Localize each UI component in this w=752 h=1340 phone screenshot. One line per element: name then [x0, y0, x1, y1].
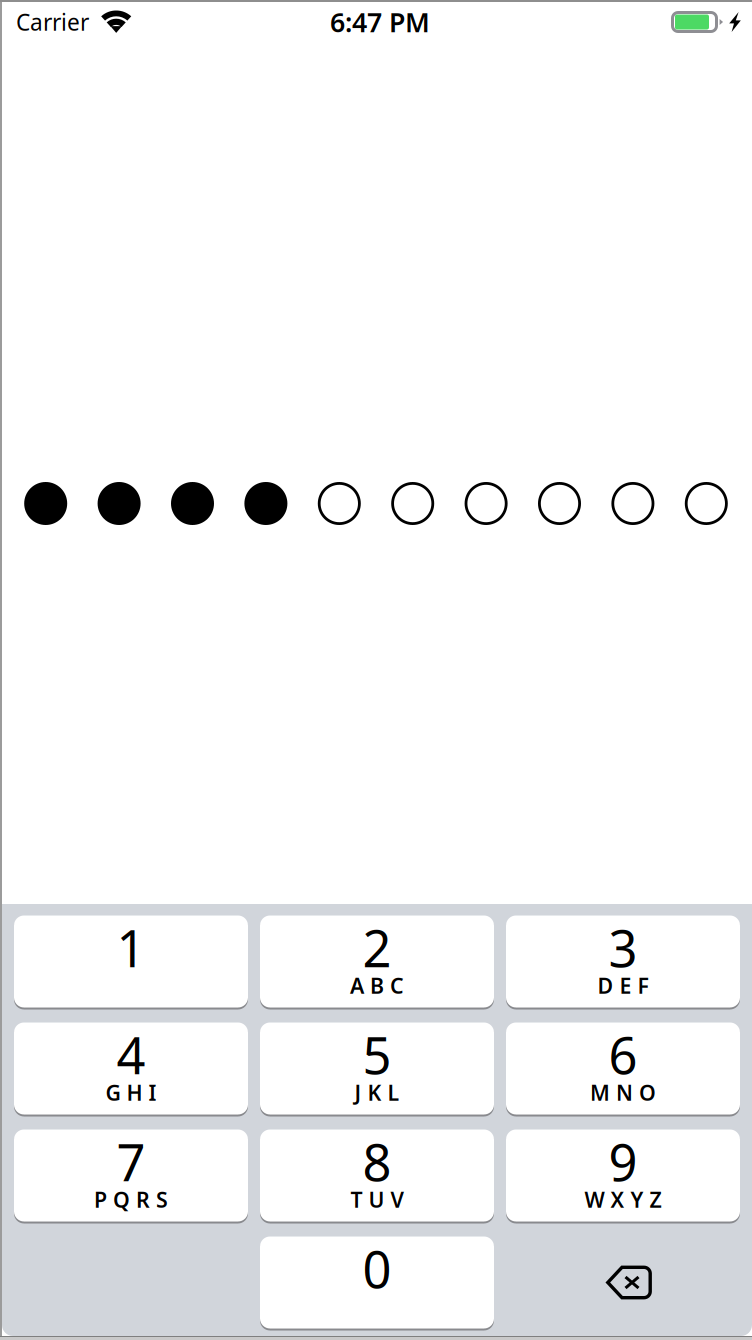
button[interactable]: 8	[260, 1128, 494, 1222]
staticText: A B C	[350, 971, 404, 1000]
staticText: W X Y Z	[584, 1185, 661, 1214]
button[interactable]: 0	[260, 1235, 494, 1329]
staticText: 4	[116, 1021, 145, 1088]
button[interactable]: 9	[506, 1128, 740, 1222]
staticText: D E F	[597, 971, 648, 1000]
button[interactable]: 2	[260, 914, 494, 1008]
staticText: 2	[362, 914, 391, 981]
button[interactable]: 5	[260, 1021, 494, 1115]
staticText: G H I	[105, 1078, 156, 1107]
staticText: T U V	[350, 1185, 403, 1214]
staticText: 8	[362, 1128, 391, 1195]
staticText: 1	[116, 914, 145, 981]
staticText: 9	[608, 1128, 637, 1195]
staticText: J K L	[354, 1078, 399, 1107]
staticText: P Q R S	[94, 1185, 168, 1214]
staticText: 3	[608, 914, 637, 981]
staticText: 0	[362, 1235, 391, 1302]
staticText: 6:47 PM	[330, 4, 430, 40]
button[interactable]: Delete	[506, 1235, 740, 1329]
button[interactable]: 4	[14, 1021, 248, 1115]
staticText: 6	[608, 1021, 637, 1088]
button[interactable]: 7	[14, 1128, 248, 1222]
staticText: 7	[116, 1128, 145, 1195]
button[interactable]: 3	[506, 914, 740, 1008]
staticText: 5	[362, 1021, 391, 1088]
button[interactable]: 6	[506, 1021, 740, 1115]
button[interactable]: 1	[14, 914, 248, 1008]
staticText: M N O	[590, 1078, 656, 1107]
staticText: Carrier	[16, 7, 89, 37]
